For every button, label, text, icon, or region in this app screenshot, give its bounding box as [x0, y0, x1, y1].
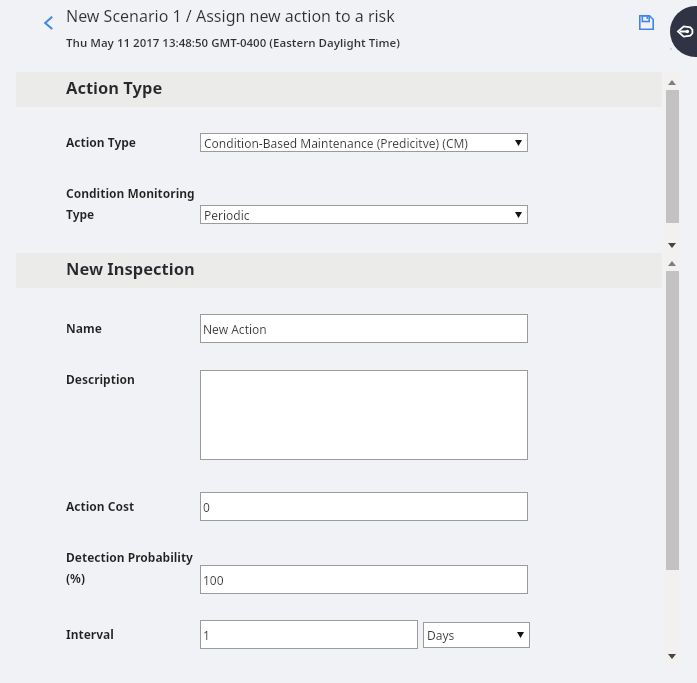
- staticText: New Inspection: [66, 257, 195, 279]
- button[interactable]: New Action: [200, 314, 528, 343]
- staticText: Periodic: [204, 207, 250, 223]
- staticText: New Scenario 1 / Assign new action to a …: [66, 5, 395, 27]
- button[interactable]: Scroll: [664, 254, 680, 665]
- button[interactable]: Days: [423, 622, 530, 648]
- staticText: 1: [203, 627, 210, 643]
- staticText: Action Type: [66, 134, 136, 150]
- staticText: Condition Monitoring: [66, 185, 195, 201]
- button[interactable]: Condition-Based Maintenance (Predicitve)…: [200, 133, 528, 152]
- staticText: Description: [66, 371, 135, 387]
- button[interactable]: [200, 370, 528, 460]
- staticText: Name: [66, 320, 102, 336]
- staticText: Action Type: [66, 76, 163, 98]
- button[interactable]: Periodic: [200, 205, 528, 224]
- staticText: New Action: [203, 321, 267, 337]
- button[interactable]: 100: [200, 565, 528, 594]
- button[interactable]: 0: [200, 492, 528, 521]
- staticText: Interval: [66, 626, 114, 642]
- staticText: (%): [66, 570, 85, 586]
- button[interactable]: 1: [200, 620, 418, 649]
- button[interactable]: Scroll: [664, 72, 680, 254]
- button[interactable]: Back: [37, 9, 61, 33]
- staticText: 0: [203, 499, 210, 515]
- staticText: Detection Probability: [66, 549, 193, 565]
- staticText: Type: [66, 206, 95, 222]
- button[interactable]: Options: [670, 6, 697, 57]
- staticText: Days: [427, 627, 455, 643]
- staticText: Action Cost: [66, 498, 135, 514]
- staticText: 100: [203, 572, 224, 588]
- staticText: Thu May 11 2017 13:48:50 GMT-0400 (Easte…: [66, 35, 400, 51]
- button[interactable]: Save: [638, 14, 657, 33]
- staticText: Condition-Based Maintenance (Predicitve)…: [204, 135, 468, 151]
